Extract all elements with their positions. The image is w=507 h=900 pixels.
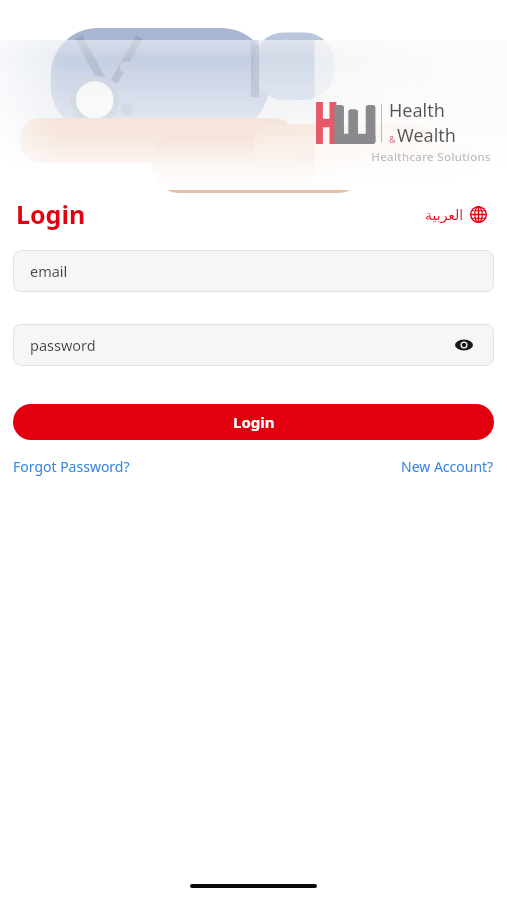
button[interactable]: Show password	[451, 332, 477, 358]
staticText: Login	[233, 412, 275, 432]
staticText: email	[30, 261, 68, 281]
staticText: Login	[16, 197, 86, 231]
button[interactable]: Forgot Password?	[13, 454, 130, 479]
staticText: العربية	[425, 207, 464, 223]
staticText: password	[30, 335, 96, 355]
button[interactable]: password	[13, 324, 494, 366]
staticText: Wealth	[397, 123, 456, 148]
staticText: New Account?	[401, 457, 494, 476]
button[interactable]: Switch language to Arabic	[421, 202, 491, 227]
staticText: &	[389, 133, 396, 145]
button[interactable]: New Account?	[401, 454, 494, 479]
button[interactable]: Login	[13, 404, 494, 440]
staticText: Health	[389, 98, 445, 123]
button[interactable]: email	[13, 250, 494, 292]
staticText: Forgot Password?	[13, 457, 130, 476]
staticText: Healthcare Solutions	[316, 149, 491, 165]
